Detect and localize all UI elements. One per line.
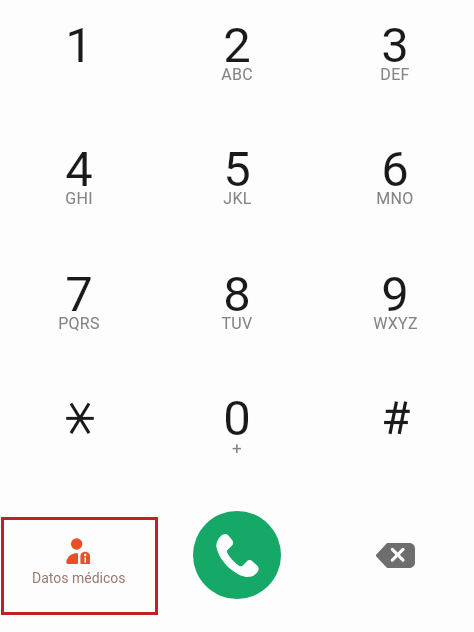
- staticText: 2: [223, 17, 251, 74]
- button[interactable]: Call: [193, 511, 281, 599]
- button[interactable]: 3: [316, 1, 474, 125]
- button[interactable]: 0: [158, 374, 316, 498]
- staticText: JKL: [223, 189, 252, 208]
- staticText: +: [232, 438, 242, 458]
- staticText: 8: [223, 266, 251, 323]
- staticText: MNO: [376, 189, 414, 208]
- staticText: TUV: [221, 314, 253, 333]
- button[interactable]: 2: [158, 1, 316, 125]
- staticText: Datos médicos: [32, 570, 126, 586]
- staticText: 5: [223, 141, 251, 198]
- staticText: PQRS: [58, 314, 100, 333]
- button[interactable]: 1: [0, 1, 158, 125]
- button[interactable]: 9: [316, 250, 474, 374]
- staticText: 0: [223, 390, 251, 447]
- staticText: 7: [65, 266, 93, 323]
- staticText: 4: [65, 141, 93, 198]
- button[interactable]: 6: [316, 125, 474, 249]
- staticText: ABC: [221, 65, 253, 84]
- staticText: WXYZ: [373, 314, 418, 333]
- button[interactable]: 4: [0, 125, 158, 249]
- button[interactable]: 5: [158, 125, 316, 249]
- button[interactable]: Backspace: [371, 536, 419, 575]
- button[interactable]: Star: [0, 374, 158, 498]
- staticText: 3: [381, 17, 409, 74]
- button[interactable]: Pound: [316, 374, 474, 498]
- staticText: DEF: [380, 65, 410, 84]
- staticText: GHI: [65, 189, 93, 208]
- button[interactable]: Datos médicos: [4, 520, 154, 612]
- staticText: 1: [65, 17, 93, 74]
- button[interactable]: 8: [158, 250, 316, 374]
- staticText: 9: [381, 266, 409, 323]
- button[interactable]: 7: [0, 250, 158, 374]
- staticText: 6: [381, 141, 409, 198]
